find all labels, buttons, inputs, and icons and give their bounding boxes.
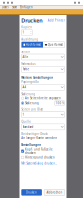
staticText: An Seitenbreite anpassen	[25, 96, 61, 100]
staticText: A4	[22, 85, 26, 89]
staticText: Seiten pro Blatt	[21, 108, 43, 111]
button[interactable]: Hochformat	[21, 42, 43, 48]
staticText: %	[62, 101, 64, 105]
button[interactable]: 1	[21, 112, 65, 118]
button[interactable]: An Seitenbreite anpassen	[19, 96, 66, 101]
button[interactable]: Abbrechen	[44, 189, 65, 196]
staticText: Skalierung	[21, 92, 35, 96]
staticText: Kopien	[21, 25, 32, 29]
staticText: Datei	[2, 5, 9, 9]
staticText: Kopf- und Fußzeile drucken	[25, 148, 53, 155]
staticText: 100	[55, 101, 61, 105]
staticText: Quelle	[21, 120, 31, 123]
staticText: ▾	[30, 33, 31, 34]
staticText: Seiten	[21, 50, 30, 53]
staticText: Mit Systemdialog drucken…	[21, 162, 57, 165]
button[interactable]: Standard	[21, 124, 65, 130]
staticText: Farbmodus	[21, 62, 35, 66]
staticText: Hintergrund drucken	[25, 156, 55, 159]
button[interactable]: Mit Systemdialog drucken…	[19, 160, 66, 167]
staticText: Standard	[22, 125, 33, 129]
staticText: An langer Kante wenden	[21, 136, 57, 140]
staticText: Drucken	[26, 191, 37, 194]
staticText: Einstellungen	[21, 143, 41, 147]
staticText: Weitere Einstellungen	[21, 76, 53, 79]
staticText: Add Printer	[48, 19, 65, 22]
staticText: Skalierung	[25, 101, 39, 105]
staticText: 1	[22, 31, 24, 34]
button[interactable]: Kopf- und Fußzeile drucken	[19, 148, 66, 156]
button[interactable]: Alle	[21, 54, 65, 60]
staticText: Drucken	[21, 17, 42, 24]
staticText: Alle	[22, 55, 28, 59]
button[interactable]: Drucken	[21, 189, 42, 196]
staticText: Einfügen	[20, 5, 33, 9]
button[interactable]: Hintergrund drucken	[19, 156, 66, 160]
button[interactable]: Add Printer	[48, 19, 65, 22]
button[interactable]: A4	[21, 84, 65, 90]
staticText: Ausrichtung	[21, 38, 38, 41]
staticText: 1	[22, 113, 24, 116]
staticText: Start	[12, 5, 17, 9]
staticText: Querformat	[48, 43, 63, 46]
staticText: Papiergröße	[21, 80, 39, 84]
staticText: Beidseitiger Druck	[21, 132, 47, 136]
button[interactable]: Farbe	[21, 66, 65, 72]
staticText: Farbe	[22, 67, 29, 71]
staticText: Abbrechen	[46, 191, 62, 194]
button[interactable]: Querformat	[43, 42, 65, 48]
staticText: ▴	[30, 31, 31, 32]
staticText: Hochformat	[26, 43, 41, 46]
